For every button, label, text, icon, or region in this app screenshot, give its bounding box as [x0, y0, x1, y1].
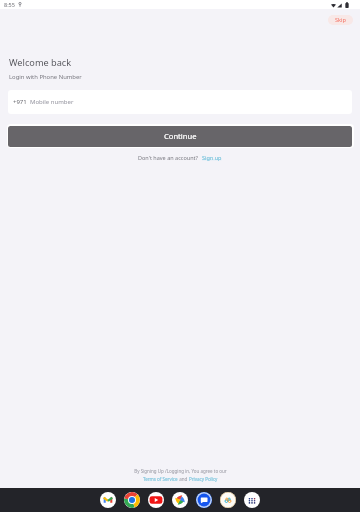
staticText: Don't have an account?: [138, 154, 198, 161]
staticText: By Signing Up /Logging in, You agree to …: [134, 468, 227, 474]
staticText: and: [178, 476, 189, 482]
staticText: Skip: [335, 16, 346, 24]
staticText: Welcome back: [9, 56, 72, 69]
button[interactable]: Continue: [8, 126, 352, 147]
staticText: Mobile number: [30, 98, 74, 106]
staticText: Login with Phone Number: [9, 73, 82, 81]
staticText: 8:55: [4, 1, 15, 8]
button[interactable]: Photos: [172, 492, 188, 508]
button[interactable]: Terms of Service: [143, 476, 178, 482]
button[interactable]: YouTube: [148, 492, 164, 508]
button[interactable]: Messages: [196, 492, 212, 508]
staticText: +971: [13, 98, 27, 106]
button[interactable]: Privacy Policy: [189, 476, 218, 482]
staticText: Sign up: [202, 154, 222, 161]
button[interactable]: Sign up: [202, 154, 222, 161]
staticText: Continue: [164, 131, 197, 141]
button[interactable]: Home: [220, 492, 236, 508]
button[interactable]: Gmail: [100, 492, 116, 508]
button[interactable]: Chrome: [124, 492, 140, 508]
staticText: Terms of Service: [143, 476, 178, 482]
button[interactable]: All apps: [244, 492, 260, 508]
button[interactable]: +971: [8, 90, 352, 114]
button[interactable]: Skip: [328, 15, 353, 25]
staticText: Privacy Policy: [189, 476, 218, 482]
